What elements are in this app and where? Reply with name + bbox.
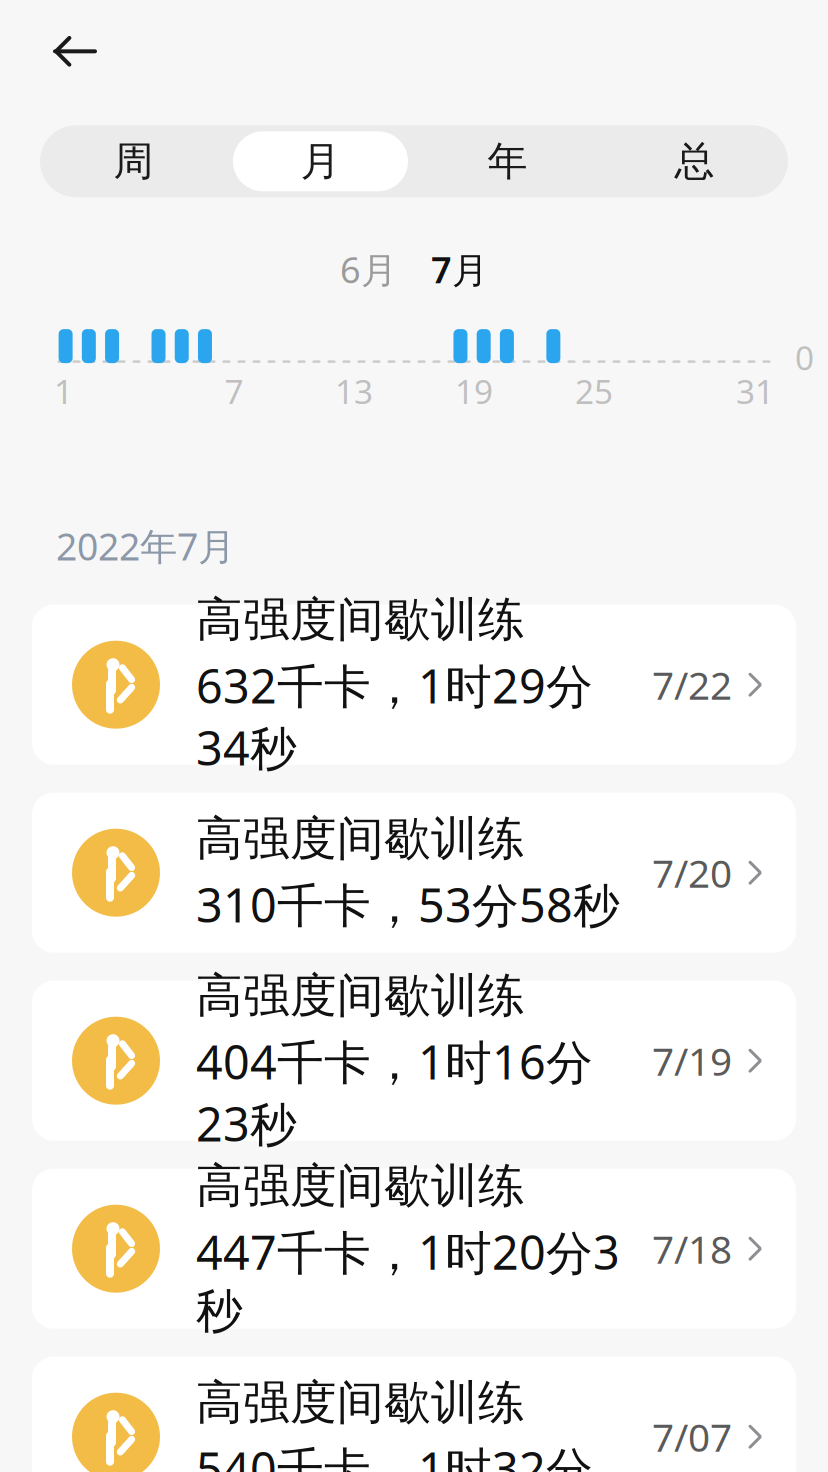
staticText: 2022年7月 [56,521,235,571]
staticText: 高强度间歇训练 [196,967,525,1024]
button[interactable]: 高强度间歇训练 [32,1169,796,1329]
staticText: 1 [54,369,73,413]
staticText: 31 [736,369,774,413]
staticText: 月 [300,137,340,186]
button[interactable]: 月 [227,125,414,197]
staticText: 6月 [340,245,397,293]
button[interactable]: 返回 [38,20,112,82]
staticText: 632千卡，1时29分34秒 [196,654,593,778]
button[interactable]: 高强度间歇训练 [32,605,796,765]
staticText: 25 [575,369,613,413]
staticText: 高强度间歇训练 [196,1157,525,1215]
staticText: 7/22 [652,659,732,710]
button[interactable]: 总 [601,125,788,197]
button[interactable]: 高强度间歇训练 [32,981,796,1141]
staticText: 周 [113,137,153,186]
staticText: 404千卡，1时16分23秒 [196,1030,593,1154]
staticText: 7/18 [652,1223,732,1274]
staticText: 540千卡，1时32分 [196,1437,593,1472]
staticText: 7月 [431,245,488,293]
button[interactable]: 周 [40,125,227,197]
button[interactable]: 高强度间歇训练 [32,793,796,953]
staticText: 7/20 [652,847,732,898]
staticText: 0 [795,335,814,379]
staticText: 高强度间歇训练 [196,810,525,867]
staticText: 310千卡，53分58秒 [196,873,620,935]
staticText: 19 [455,369,493,413]
staticText: 447千卡，1时20分3秒 [196,1221,620,1340]
staticText: 总 [674,137,714,186]
staticText: 高强度间歇训练 [196,1374,525,1431]
staticText: 高强度间歇训练 [196,591,525,648]
staticText: 年 [487,137,527,186]
staticText: 7/07 [652,1411,732,1462]
button[interactable]: 高强度间歇训练 [32,1357,796,1472]
button[interactable]: 年 [414,125,601,197]
staticText: 7 [224,369,243,413]
staticText: 7/19 [652,1035,732,1086]
staticText: 13 [335,369,373,413]
